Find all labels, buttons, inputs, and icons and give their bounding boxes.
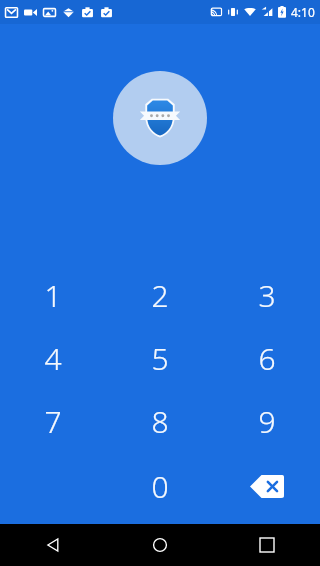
staticText: 3 bbox=[258, 275, 276, 316]
button[interactable]: Backspace bbox=[213, 453, 320, 519]
staticText: 0 bbox=[151, 466, 169, 507]
button[interactable]: 8 bbox=[106, 390, 213, 453]
staticText: 9 bbox=[258, 401, 276, 442]
button[interactable]: 3 bbox=[213, 264, 320, 327]
button[interactable]: 5 bbox=[106, 327, 213, 390]
button[interactable]: 1 bbox=[0, 264, 106, 327]
button[interactable]: Back bbox=[0, 524, 106, 566]
button[interactable]: Recent apps bbox=[213, 524, 320, 566]
staticText: 2 bbox=[151, 275, 169, 316]
button[interactable]: 4 bbox=[0, 327, 106, 390]
button[interactable]: 0 bbox=[106, 453, 213, 519]
staticText: 4 bbox=[44, 338, 62, 379]
button[interactable]: 7 bbox=[0, 390, 106, 453]
staticText: 4:10 bbox=[291, 4, 315, 20]
staticText: 1 bbox=[44, 275, 62, 316]
button[interactable]: 2 bbox=[106, 264, 213, 327]
button[interactable]: 9 bbox=[213, 390, 320, 453]
button[interactable]: 6 bbox=[213, 327, 320, 390]
staticText: 7 bbox=[44, 401, 62, 442]
button[interactable]: Home bbox=[106, 524, 213, 566]
staticText: 6 bbox=[258, 338, 276, 379]
staticText: 5 bbox=[151, 338, 169, 379]
staticText: 8 bbox=[151, 401, 169, 442]
